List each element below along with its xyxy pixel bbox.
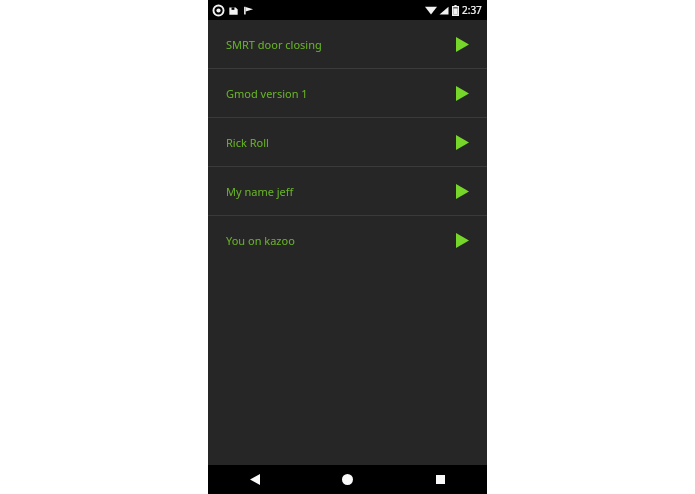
staticText: 2:37 xyxy=(462,3,482,17)
button[interactable]: You on kazoo xyxy=(208,216,487,264)
button[interactable]: Gmod version 1 xyxy=(208,69,487,117)
button[interactable]: SMRT door closing xyxy=(208,20,487,68)
other: Play My name jeff xyxy=(451,180,473,202)
staticText: My name jeff xyxy=(226,184,451,199)
staticText: SMRT door closing xyxy=(226,37,451,52)
staticText: You on kazoo xyxy=(226,233,451,248)
button[interactable]: Rick Roll xyxy=(208,118,487,166)
other: Play Rick Roll xyxy=(451,131,473,153)
other: Play SMRT door closing xyxy=(451,33,473,55)
button[interactable]: Recent apps xyxy=(394,465,487,494)
other: Play Gmod version 1 xyxy=(451,82,473,104)
staticText: Rick Roll xyxy=(226,135,451,150)
button[interactable]: Back xyxy=(208,465,301,494)
staticText: Gmod version 1 xyxy=(226,86,451,101)
other: Play You on kazoo xyxy=(451,229,473,251)
button[interactable]: My name jeff xyxy=(208,167,487,215)
button[interactable]: Home xyxy=(301,465,394,494)
